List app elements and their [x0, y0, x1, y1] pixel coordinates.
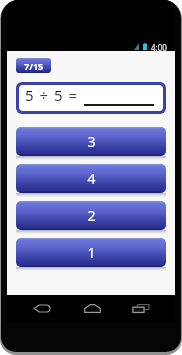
button[interactable]: 3: [16, 127, 166, 156]
button[interactable]: Recent apps: [126, 298, 156, 319]
staticText: 2: [87, 206, 96, 225]
staticText: 5 ÷ 5 =: [25, 85, 79, 105]
button[interactable]: Home: [77, 298, 107, 319]
button[interactable]: 1: [16, 238, 166, 267]
staticText: 7/15: [24, 60, 44, 72]
staticText: 1: [87, 243, 96, 262]
staticText: 3: [87, 132, 96, 151]
button[interactable]: 2: [16, 201, 166, 230]
staticText: 4:00: [151, 42, 167, 51]
button[interactable]: 7/15: [16, 58, 51, 73]
staticText: 4: [87, 169, 96, 188]
button[interactable]: 4: [16, 164, 166, 193]
button[interactable]: Back: [27, 298, 57, 319]
